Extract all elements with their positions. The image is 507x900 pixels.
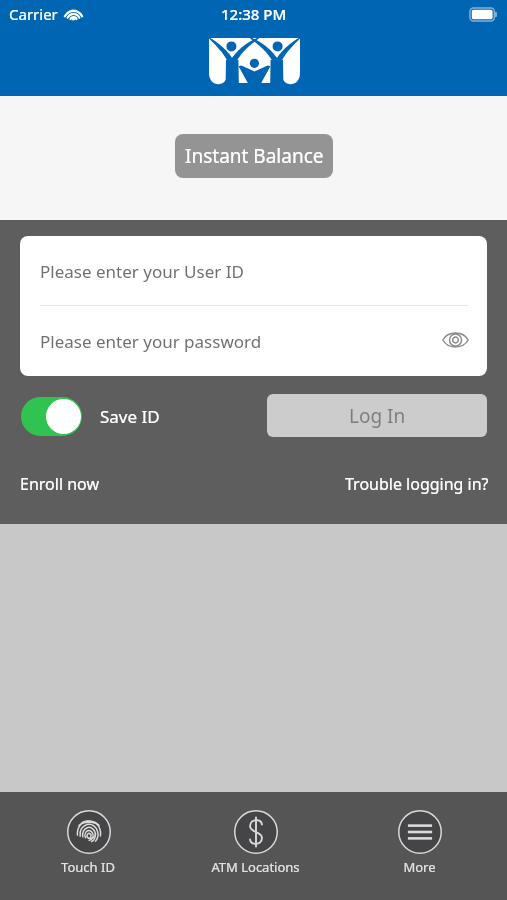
button[interactable]: Touch ID <box>33 809 143 891</box>
button[interactable]: Trouble logging in? <box>345 473 489 495</box>
staticText: Instant Balance <box>185 143 324 169</box>
staticText: Trouble logging in? <box>345 473 489 495</box>
button[interactable]: Enroll now <box>20 473 99 495</box>
button[interactable]: More <box>364 809 474 891</box>
staticText: Enroll now <box>20 473 99 495</box>
button[interactable]: Show password <box>434 323 476 357</box>
button[interactable]: Log In <box>267 394 487 437</box>
staticText: More <box>403 858 436 876</box>
staticText: Touch ID <box>61 858 115 876</box>
staticText: Please enter your User ID <box>40 260 244 283</box>
button[interactable]: Please enter your password <box>20 306 487 376</box>
staticText: ATM Locations <box>211 858 300 876</box>
button[interactable]: ATM Locations <box>200 809 310 891</box>
staticText: Save ID <box>100 405 160 428</box>
button[interactable]: Please enter your User ID <box>20 236 487 306</box>
staticText: Carrier <box>9 4 58 24</box>
button[interactable]: Save ID <box>21 396 160 436</box>
staticText: Log In <box>349 403 406 429</box>
staticText: Please enter your password <box>40 330 262 353</box>
staticText: 12:38 PM <box>221 4 287 24</box>
button[interactable]: Instant Balance <box>175 134 333 178</box>
